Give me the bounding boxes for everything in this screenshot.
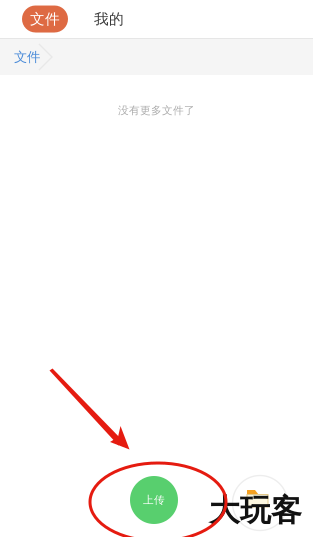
staticText: 文件 — [14, 49, 40, 65]
staticText: 文件 — [30, 10, 60, 28]
staticText: 没有更多文件了 — [118, 104, 195, 117]
button[interactable]: 上传 — [130, 476, 178, 524]
staticText: 上传 — [143, 493, 165, 506]
staticText: 大玩客 — [209, 492, 302, 529]
button[interactable]: 文件 — [0, 39, 41, 75]
staticText: 我的 — [94, 10, 124, 28]
button[interactable]: 我的 — [86, 5, 132, 32]
button[interactable]: 文件 — [22, 5, 68, 32]
